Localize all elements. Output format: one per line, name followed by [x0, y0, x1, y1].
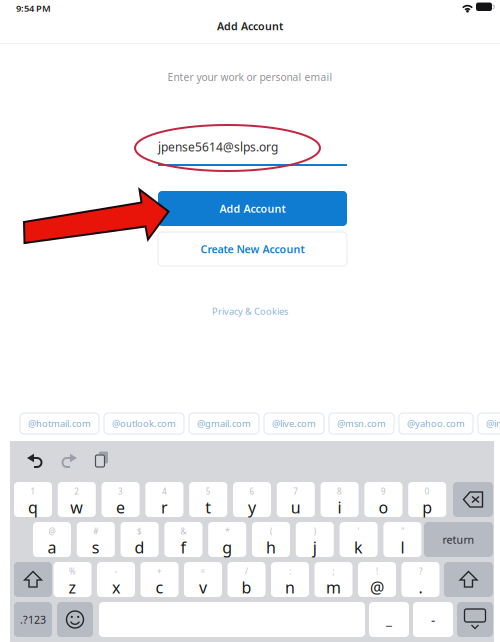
button[interactable]: # [77, 522, 115, 557]
button[interactable]: : [271, 562, 309, 597]
button[interactable]: 4 [145, 482, 183, 517]
staticText: e [116, 497, 125, 518]
staticText: ? [419, 566, 422, 577]
staticText: . [418, 577, 422, 598]
staticText: 9:54 PM [16, 2, 51, 14]
button[interactable]: 1 [14, 482, 52, 517]
button[interactable]: Key [57, 602, 93, 637]
staticText: 5 [206, 486, 211, 497]
button[interactable]: Key [453, 482, 493, 517]
staticText: i [338, 497, 342, 518]
staticText: ) [314, 526, 316, 537]
staticText: o [378, 497, 388, 518]
staticText: m [326, 577, 341, 598]
button[interactable]: % [53, 562, 91, 597]
staticText: jpense5614@slps.org [158, 139, 278, 155]
button[interactable]: * [208, 522, 246, 557]
staticText: % [69, 566, 76, 577]
staticText: @msn.com [337, 417, 386, 430]
button[interactable]: @ [33, 522, 71, 557]
staticText: f [180, 537, 186, 558]
button[interactable]: Key [444, 562, 493, 597]
button[interactable]: @hotmail.com [20, 413, 99, 434]
staticText: _ [386, 611, 392, 628]
staticText: " [401, 526, 404, 537]
staticText: a [47, 537, 56, 558]
button[interactable]: - [97, 562, 135, 597]
button[interactable]: Key [14, 562, 52, 597]
button[interactable]: ; [314, 562, 352, 597]
staticText: t [205, 497, 211, 518]
staticText: Create New Account [200, 242, 304, 256]
button[interactable]: 3 [102, 482, 140, 517]
staticText: ; [332, 566, 334, 577]
button[interactable]: ! [358, 562, 396, 597]
button[interactable]: + [140, 562, 178, 597]
staticText: * [225, 526, 229, 537]
staticText: c [155, 577, 163, 598]
staticText: ! [376, 566, 378, 577]
staticText: q [28, 497, 38, 518]
button[interactable]: return [424, 522, 493, 557]
button[interactable]: - [413, 602, 453, 637]
staticText: p [422, 497, 432, 518]
button[interactable]: ) [296, 522, 334, 557]
staticText: b [241, 577, 251, 598]
staticText: 9 [381, 486, 386, 497]
staticText: 4 [162, 486, 167, 497]
staticText: j [313, 537, 317, 558]
button[interactable]: 6 [233, 482, 271, 517]
button[interactable]: 0 [408, 482, 446, 517]
button[interactable]: / [227, 562, 265, 597]
staticText: = [200, 566, 205, 577]
button[interactable]: Paste [95, 451, 109, 468]
button[interactable]: ( [252, 522, 290, 557]
staticText: x [112, 577, 120, 598]
button[interactable]: Redo [61, 451, 77, 468]
button[interactable]: = [184, 562, 222, 597]
staticText: n [285, 577, 295, 598]
staticText: 1 [30, 486, 35, 497]
button[interactable]: 2 [58, 482, 96, 517]
button[interactable]: & [164, 522, 202, 557]
button[interactable]: @gmail.com [189, 413, 259, 434]
staticText: u [291, 497, 301, 518]
staticText: & [180, 526, 186, 537]
button[interactable]: Undo [27, 451, 43, 468]
button[interactable]: Key [457, 602, 493, 637]
button[interactable]: ? [401, 562, 439, 597]
button[interactable]: 5 [189, 482, 227, 517]
staticText: ' [358, 526, 360, 537]
button[interactable]: .?123 [14, 602, 52, 637]
button[interactable]: @inf [478, 413, 500, 434]
button[interactable]: @outlook.com [104, 413, 184, 434]
button[interactable]: $ [121, 522, 159, 557]
staticText: r [161, 497, 168, 518]
button[interactable]: @yahoo.com [399, 413, 473, 434]
staticText: - [431, 611, 435, 628]
staticText: / [245, 566, 248, 577]
button[interactable]: Add Account [158, 191, 347, 226]
button[interactable]: Privacy & Cookies [0, 305, 500, 317]
staticText: Privacy & Cookies [212, 305, 288, 317]
button[interactable]: @live.com [264, 413, 324, 434]
staticText: @ [48, 526, 55, 537]
button[interactable]: 9 [364, 482, 402, 517]
button[interactable]: 7 [277, 482, 315, 517]
staticText: @hotmail.com [28, 417, 91, 430]
staticText: v [199, 577, 207, 598]
button[interactable]: " [383, 522, 421, 557]
button[interactable]: ' [340, 522, 378, 557]
staticText: y [248, 497, 256, 518]
staticText: g [222, 537, 232, 558]
button[interactable]: 8 [321, 482, 359, 517]
staticText: Add Account [219, 201, 285, 216]
staticText: 6 [249, 486, 254, 497]
staticText: # [93, 526, 98, 537]
staticText: @inf [486, 417, 500, 430]
staticText: 2 [74, 486, 79, 497]
button[interactable]: Create New Account [158, 232, 347, 266]
button[interactable]: _ [369, 602, 409, 637]
button[interactable]: @msn.com [329, 413, 394, 434]
